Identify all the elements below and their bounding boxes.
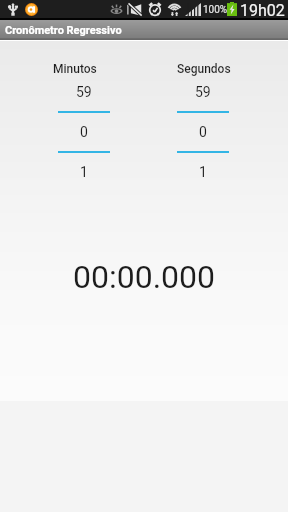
staticText: 00:00.000 [0, 258, 288, 296]
staticText: 1 [199, 164, 207, 180]
staticText: 0 [199, 124, 207, 140]
button[interactable]: 59 [175, 82, 231, 183]
other: Silent mode [127, 3, 142, 16]
other: Notification [25, 3, 38, 16]
staticText: 0 [80, 124, 88, 140]
staticText: 19h02 [240, 1, 285, 20]
staticText: Minutos [53, 62, 97, 76]
staticText: 59 [76, 84, 92, 100]
button[interactable]: 59 [56, 82, 112, 183]
staticText: 100% [203, 4, 228, 16]
staticText: Segundos [177, 62, 231, 76]
staticText: Cronômetro Regressivo [5, 24, 122, 37]
staticText: 1 [80, 164, 88, 180]
staticText: 59 [195, 84, 211, 100]
other: USB connected [8, 3, 18, 16]
